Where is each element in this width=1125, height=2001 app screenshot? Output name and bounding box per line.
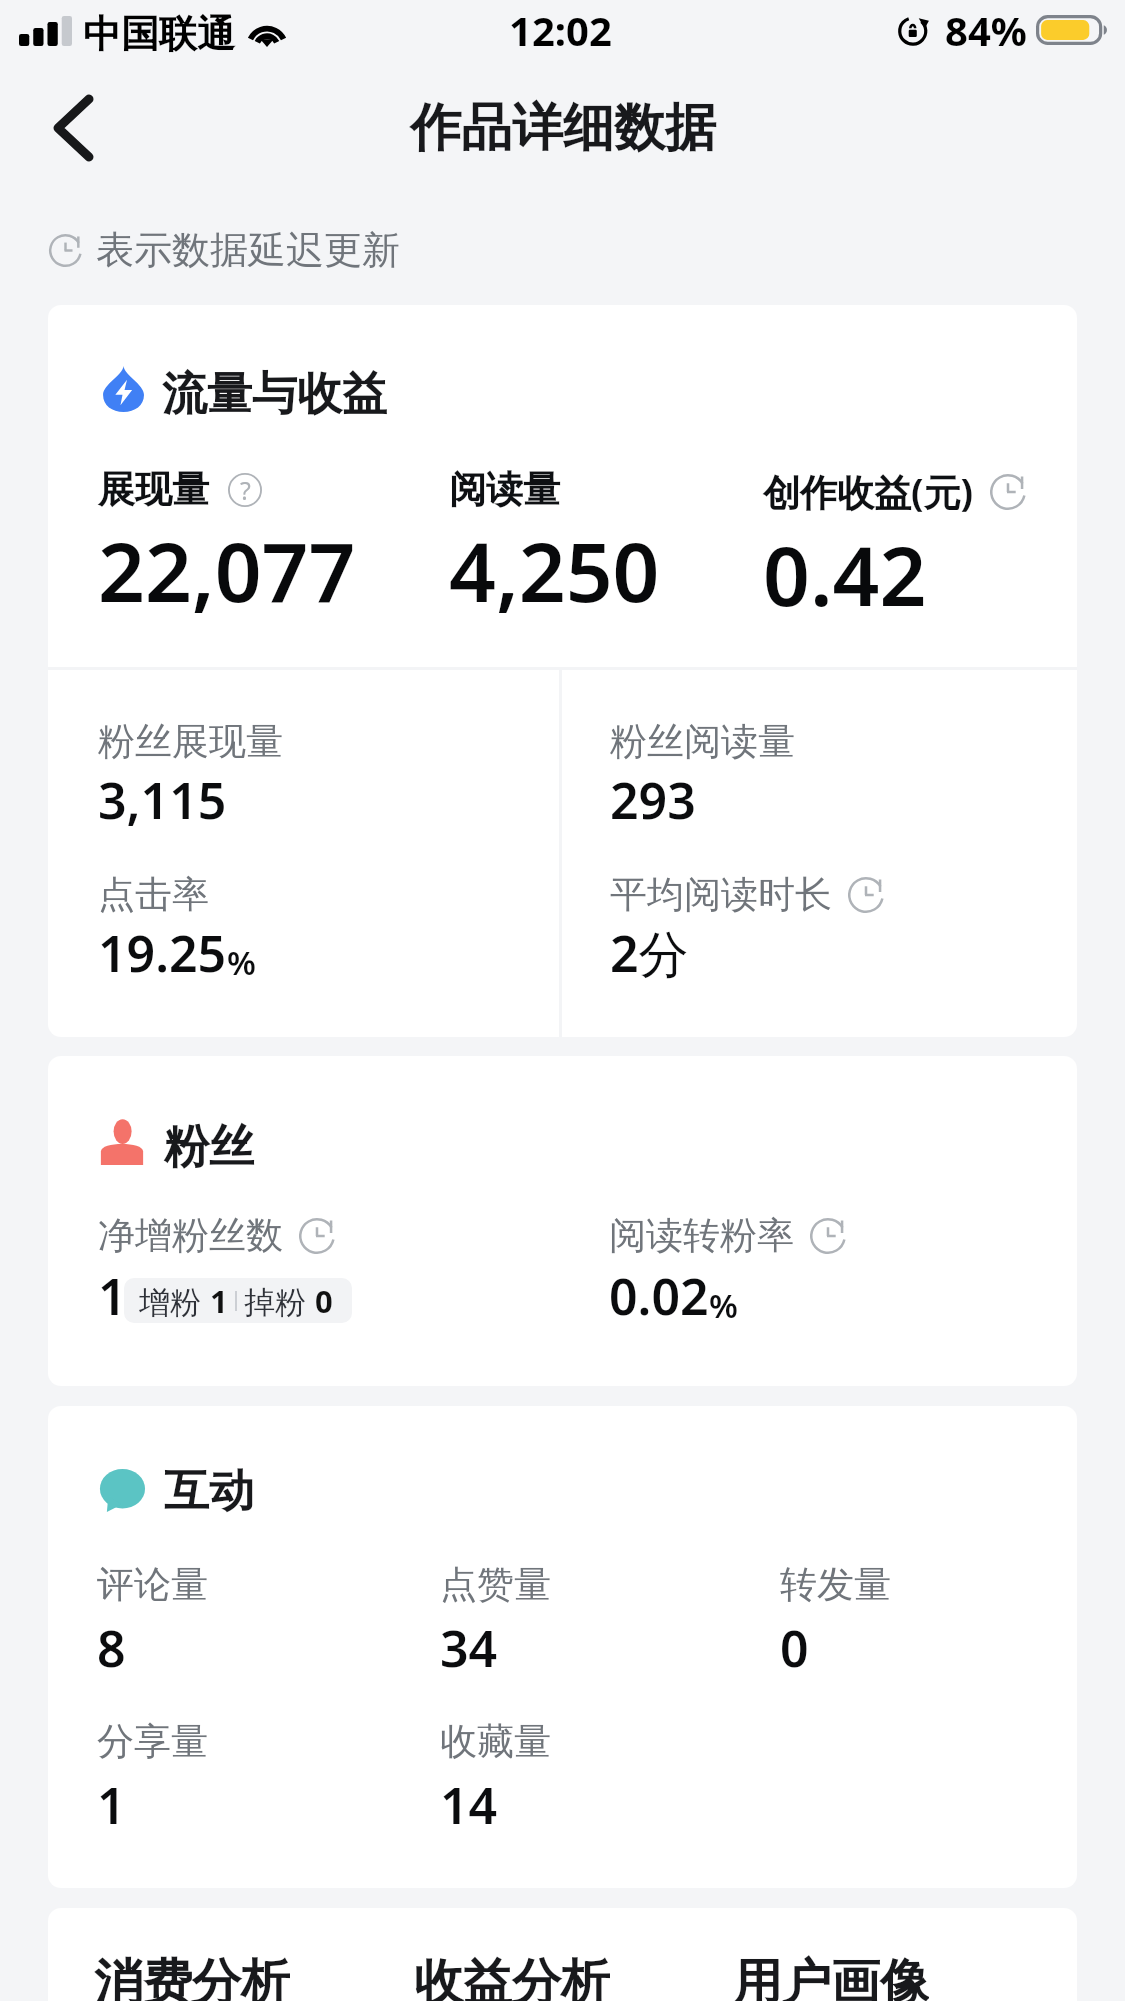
button[interactable]: 分享量 bbox=[97, 1718, 440, 1839]
button[interactable]: Data is delayed bbox=[810, 1218, 846, 1254]
staticText: 展现量 bbox=[98, 466, 209, 513]
button[interactable]: 用户画像 bbox=[733, 1952, 1077, 2001]
button[interactable]: Back bbox=[23, 73, 123, 183]
staticText: 34 bbox=[440, 1614, 498, 1682]
button[interactable]: What is impressions bbox=[228, 473, 262, 507]
staticText: 作品详细数据 bbox=[410, 96, 716, 160]
staticText: 粉丝 bbox=[164, 1119, 254, 1176]
button[interactable]: Data is delayed bbox=[299, 1218, 335, 1254]
staticText: 阅读量 bbox=[449, 466, 560, 513]
staticText: 2分 bbox=[610, 919, 689, 987]
staticText: 14 bbox=[440, 1771, 498, 1839]
staticText: 收益分析 bbox=[414, 1952, 610, 2001]
button[interactable]: 消费分析 bbox=[94, 1952, 414, 2001]
staticText: 粉丝展现量 bbox=[98, 718, 283, 765]
staticText: 创作收益(元) bbox=[763, 466, 974, 517]
staticText: 1 bbox=[98, 1262, 124, 1330]
button[interactable]: 展现量 bbox=[98, 466, 449, 626]
staticText: 增粉 bbox=[139, 1280, 210, 1322]
staticText: ? bbox=[240, 473, 251, 507]
staticText: 流量与收益 bbox=[162, 366, 387, 423]
staticText: 平均阅读时长 bbox=[610, 871, 832, 918]
staticText: 8 bbox=[97, 1614, 126, 1682]
staticText: 0.42 bbox=[763, 518, 927, 630]
staticText: 表示数据延迟更新 bbox=[96, 226, 400, 274]
staticText: 粉丝阅读量 bbox=[610, 718, 795, 765]
button[interactable]: 转发量 bbox=[780, 1561, 1077, 1682]
staticText: 1 bbox=[210, 1280, 228, 1322]
staticText: 点击率 bbox=[98, 871, 209, 918]
staticText: 12:02 bbox=[509, 3, 612, 57]
staticText: 阅读转粉率 bbox=[609, 1212, 794, 1259]
staticText: % bbox=[709, 1283, 738, 1328]
staticText: 转发量 bbox=[780, 1561, 891, 1608]
staticText: 消费分析 bbox=[94, 1952, 290, 2001]
staticText: 掉粉 bbox=[244, 1280, 315, 1322]
staticText: 19.25 bbox=[98, 919, 227, 987]
button[interactable]: 收藏量 bbox=[440, 1718, 780, 1839]
staticText: 0.02 bbox=[609, 1262, 709, 1330]
staticText: 评论量 bbox=[97, 1561, 208, 1608]
button[interactable]: 平均阅读时长 bbox=[610, 871, 884, 987]
staticText: 22,077 bbox=[98, 514, 356, 626]
staticText: 分享量 bbox=[97, 1718, 208, 1765]
button[interactable]: 阅读转粉率 bbox=[609, 1212, 1077, 1330]
staticText: 互动 bbox=[164, 1463, 254, 1520]
button[interactable]: Data is delayed bbox=[848, 877, 884, 913]
button[interactable]: 收益分析 bbox=[414, 1952, 733, 2001]
staticText: 4,250 bbox=[449, 514, 660, 626]
button[interactable]: 创作收益(元) bbox=[763, 466, 1077, 630]
button[interactable]: 粉丝阅读量 bbox=[610, 718, 795, 834]
staticText: 收藏量 bbox=[440, 1718, 551, 1765]
button[interactable]: 净增粉丝数 bbox=[98, 1212, 609, 1327]
button[interactable]: 点击率 bbox=[98, 871, 256, 987]
button[interactable]: Data is delayed bbox=[990, 474, 1026, 510]
staticText: 净增粉丝数 bbox=[98, 1212, 283, 1259]
button[interactable]: Data is delayed bbox=[49, 234, 82, 267]
staticText: 293 bbox=[610, 766, 696, 834]
staticText: 点赞量 bbox=[440, 1561, 551, 1608]
staticText: 3,115 bbox=[98, 766, 227, 834]
staticText: 0 bbox=[780, 1614, 809, 1682]
staticText: 中国联通 bbox=[83, 10, 235, 58]
button[interactable]: 评论量 bbox=[97, 1561, 440, 1682]
button[interactable]: 粉丝展现量 bbox=[98, 718, 283, 834]
staticText: 用户画像 bbox=[733, 1952, 929, 2001]
staticText: % bbox=[227, 940, 256, 985]
staticText: 0 bbox=[315, 1280, 333, 1322]
staticText: 84% bbox=[945, 3, 1027, 57]
button[interactable]: 阅读量 bbox=[449, 466, 763, 626]
button[interactable]: 点赞量 bbox=[440, 1561, 780, 1682]
staticText: 1 bbox=[97, 1771, 126, 1839]
